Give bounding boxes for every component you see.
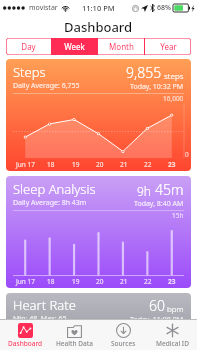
staticText: Health Data bbox=[56, 339, 93, 348]
button[interactable]: Day bbox=[6, 38, 51, 55]
staticText: Year bbox=[160, 41, 177, 52]
staticText: Daily Average: 8h 43m bbox=[13, 198, 87, 208]
staticText: 22 bbox=[144, 277, 152, 286]
staticText: 16,000 bbox=[163, 94, 184, 103]
staticText: Min: 48 Max: 65 bbox=[13, 314, 67, 319]
button[interactable]: Medical ID bbox=[148, 320, 197, 350]
staticText: bpm bbox=[167, 303, 184, 314]
staticText: 19 bbox=[72, 160, 80, 169]
staticText: 0 bbox=[185, 150, 189, 159]
staticText: 15h bbox=[172, 211, 184, 220]
staticText: 18 bbox=[47, 160, 55, 169]
button[interactable]: Week bbox=[52, 38, 97, 55]
staticText: Week bbox=[64, 41, 85, 52]
button[interactable]: Heart Rate bbox=[6, 293, 191, 319]
staticText: Today, 10:32 PM bbox=[130, 82, 184, 92]
button[interactable]: Year bbox=[145, 38, 191, 55]
staticText: Jun 17 bbox=[16, 277, 35, 286]
staticText: movistar bbox=[29, 3, 58, 13]
button[interactable]: Health Data bbox=[50, 320, 99, 350]
staticText: 20 bbox=[96, 277, 104, 286]
staticText: 19 bbox=[72, 277, 80, 286]
button[interactable]: Sources bbox=[99, 320, 148, 350]
staticText: Daily Average: 6,755 bbox=[13, 81, 80, 91]
button[interactable]: Month bbox=[98, 38, 144, 55]
staticText: 11:10 PM bbox=[82, 3, 115, 13]
staticText: 22 bbox=[144, 160, 152, 169]
staticText: Sleep Analysis bbox=[13, 180, 96, 198]
staticText: Medical ID bbox=[156, 339, 189, 348]
button[interactable]: Sleep Analysis bbox=[6, 176, 191, 288]
staticText: Today, 11:08 PM bbox=[130, 315, 184, 319]
staticText: 18 bbox=[47, 277, 55, 286]
staticText: 23 bbox=[168, 277, 176, 286]
staticText: Today, 8:40 AM bbox=[134, 199, 184, 209]
staticText: Month bbox=[109, 41, 134, 52]
staticText: 9h bbox=[137, 183, 155, 199]
staticText: 20 bbox=[96, 160, 104, 169]
button[interactable]: Dashboard bbox=[0, 320, 50, 350]
staticText: 21 bbox=[120, 277, 128, 286]
other: Sources bbox=[116, 323, 131, 338]
staticText: 45m bbox=[155, 180, 184, 199]
staticText: 9,855 bbox=[126, 63, 162, 82]
staticText: 60 bbox=[149, 296, 165, 315]
staticText: Steps bbox=[13, 63, 46, 81]
staticText: Dashboard bbox=[64, 18, 133, 36]
staticText: Sources bbox=[111, 339, 136, 348]
other: Medical ID bbox=[165, 323, 180, 338]
staticText: Dashboard bbox=[8, 339, 43, 348]
other: Dashboard bbox=[18, 323, 33, 338]
staticText: Day bbox=[21, 41, 36, 52]
other: Health Data bbox=[67, 323, 82, 338]
staticText: 68% bbox=[157, 3, 171, 13]
staticText: Heart Rate bbox=[13, 296, 76, 314]
button[interactable]: Steps bbox=[6, 59, 191, 171]
staticText: 21 bbox=[120, 160, 128, 169]
staticText: 23 bbox=[168, 160, 176, 169]
staticText: steps bbox=[164, 70, 184, 81]
staticText: Jun 17 bbox=[16, 160, 35, 169]
